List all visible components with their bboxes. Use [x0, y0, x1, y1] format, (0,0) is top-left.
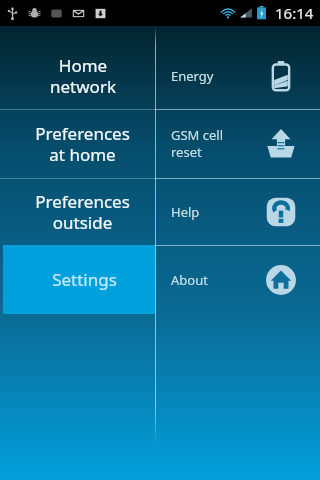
staticText: 16:14: [275, 3, 314, 23]
other: Energy: [264, 59, 298, 93]
other: About: [264, 263, 298, 297]
staticText: GSM cell reset: [171, 126, 224, 161]
staticText: Preferences at home: [35, 122, 130, 166]
button[interactable]: Help: [155, 178, 320, 245]
button[interactable]: Preferences outside: [0, 178, 155, 245]
staticText: Preferences outside: [35, 190, 130, 234]
button[interactable]: Energy: [155, 42, 320, 109]
button[interactable]: GSM cell reset: [155, 109, 320, 178]
button[interactable]: Settings: [3, 245, 155, 314]
staticText: Home network: [50, 54, 116, 98]
staticText: About: [171, 271, 208, 289]
button[interactable]: Home network: [0, 42, 155, 109]
staticText: Energy: [171, 67, 214, 85]
other: Help: [264, 195, 298, 229]
button[interactable]: Preferences at home: [0, 109, 155, 178]
button[interactable]: About: [155, 245, 320, 314]
staticText: Help: [171, 203, 200, 221]
other: GSM cell reset: [264, 127, 298, 161]
staticText: Settings: [52, 268, 117, 291]
